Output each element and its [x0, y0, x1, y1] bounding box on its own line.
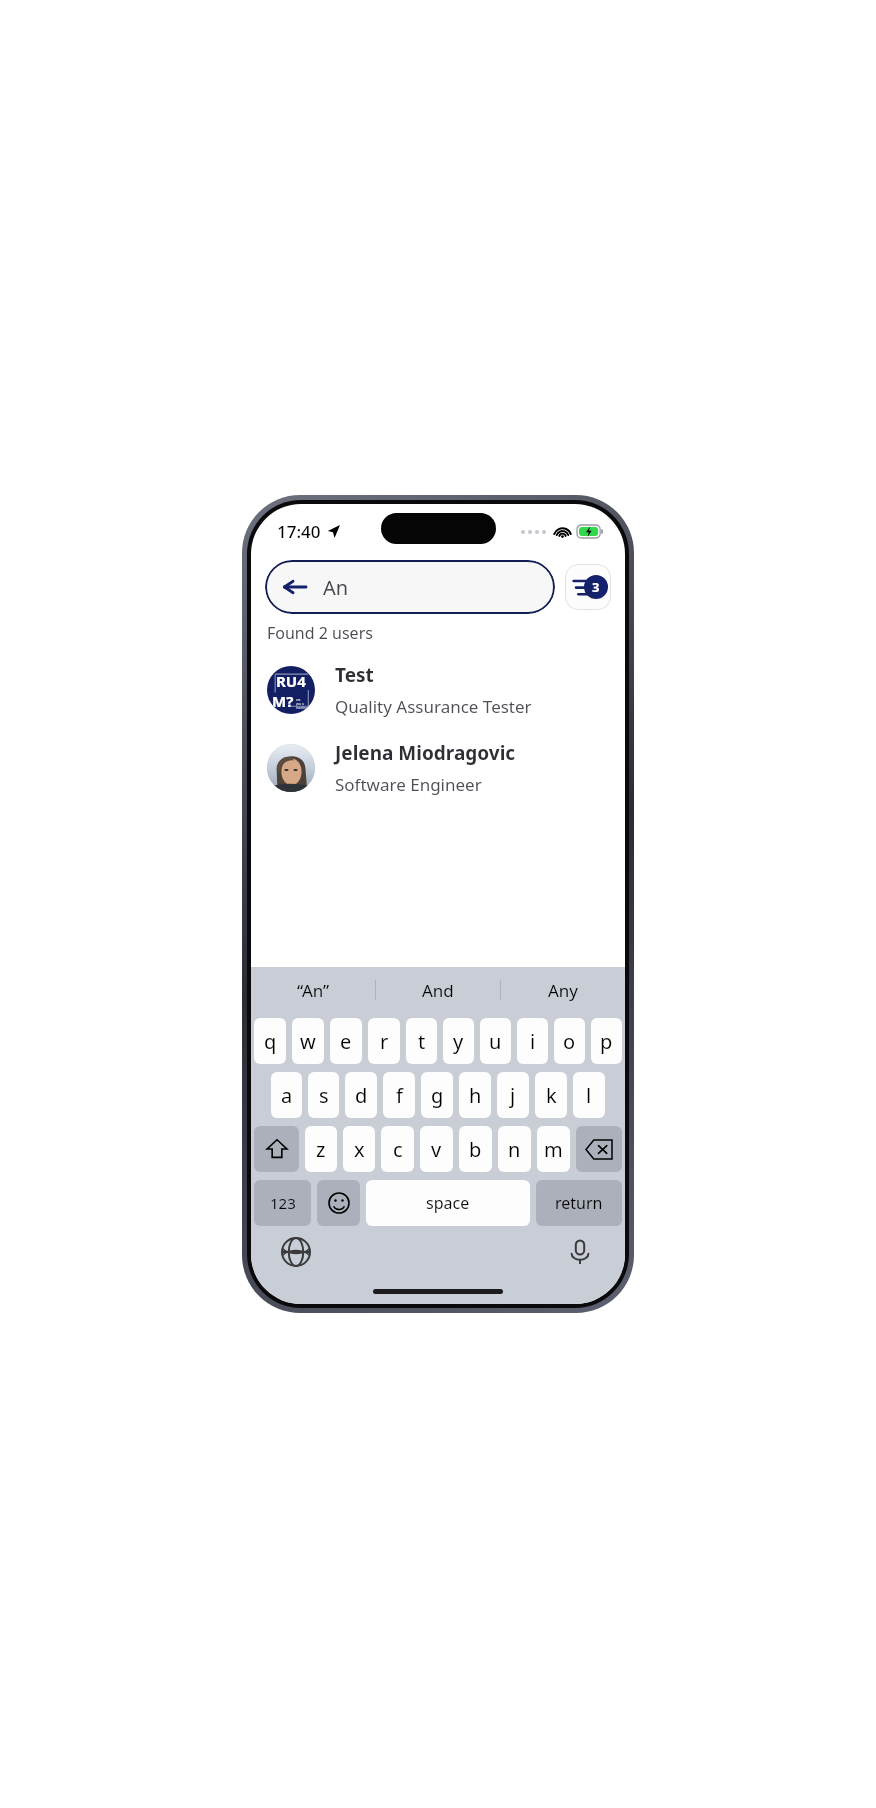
staticText: y [453, 1028, 464, 1055]
staticText: h [469, 1082, 482, 1109]
staticText: v [431, 1136, 442, 1163]
button[interactable]: v [420, 1126, 453, 1172]
button[interactable]: d [345, 1072, 377, 1118]
staticText: And [422, 979, 454, 1002]
staticText: Any [548, 979, 579, 1002]
button[interactable]: space [366, 1180, 530, 1226]
button[interactable]: t [406, 1018, 437, 1064]
staticText: w [300, 1028, 316, 1055]
button[interactable]: j [497, 1072, 529, 1118]
button[interactable]: r [368, 1018, 400, 1064]
staticText: i [530, 1028, 536, 1055]
staticText: o [563, 1028, 576, 1055]
button[interactable]: “An” [251, 967, 375, 1013]
staticText: n [508, 1136, 521, 1163]
staticText: return [555, 1192, 603, 1214]
staticText: Jelena Miodragovic [335, 740, 516, 766]
staticText: s [319, 1082, 329, 1109]
button[interactable]: p [591, 1018, 622, 1064]
button[interactable]: Filters, 3 active [565, 564, 611, 610]
button[interactable]: And [376, 967, 500, 1013]
staticText: z [316, 1136, 326, 1163]
button[interactable]: g [421, 1072, 453, 1118]
staticText: you a [296, 702, 304, 706]
button[interactable]: y [443, 1018, 474, 1064]
staticText: r [380, 1028, 389, 1055]
staticText: d [355, 1082, 368, 1109]
button[interactable]: Shift [254, 1126, 299, 1172]
button[interactable]: return [536, 1180, 622, 1226]
staticText: M? [272, 691, 294, 711]
button[interactable]: 123 [254, 1180, 311, 1226]
button[interactable]: z [305, 1126, 337, 1172]
button[interactable]: RU4 [251, 660, 625, 720]
staticText: Quality Assurance Tester [335, 695, 532, 718]
button[interactable]: Delete [576, 1126, 622, 1172]
button[interactable]: x [343, 1126, 375, 1172]
staticText: Test [335, 662, 374, 688]
staticText: u [489, 1028, 502, 1055]
staticText: l [586, 1082, 592, 1109]
staticText: meeting? [296, 706, 310, 710]
staticText: j [510, 1082, 516, 1109]
staticText: Found 2 users [267, 622, 373, 644]
button[interactable]: Any [501, 967, 625, 1013]
button[interactable]: u [480, 1018, 511, 1064]
staticText: k [546, 1082, 557, 1109]
button[interactable]: k [535, 1072, 567, 1118]
button[interactable]: i [517, 1018, 548, 1064]
button[interactable]: m [537, 1126, 570, 1172]
staticText: Software Engineer [335, 773, 482, 796]
button[interactable]: q [254, 1018, 286, 1064]
button[interactable]: Change keyboard [279, 1235, 313, 1269]
other: Back [283, 575, 307, 599]
staticText: b [469, 1136, 482, 1163]
button[interactable]: Back [265, 560, 555, 614]
button[interactable]: b [459, 1126, 492, 1172]
staticText: e [340, 1028, 352, 1055]
staticText: “An” [297, 979, 330, 1002]
button[interactable]: h [459, 1072, 491, 1118]
staticText: q [264, 1028, 277, 1055]
button[interactable]: f [383, 1072, 415, 1118]
button[interactable]: l [573, 1072, 605, 1118]
button[interactable]: w [292, 1018, 324, 1064]
staticText: m [544, 1136, 563, 1163]
staticText: 17:40 [277, 520, 321, 543]
staticText: RU4 [276, 671, 306, 691]
staticText: An [323, 574, 349, 601]
staticText: 3 [592, 578, 600, 596]
staticText: a [281, 1082, 293, 1109]
staticText: x [354, 1136, 365, 1163]
button[interactable]: c [381, 1126, 414, 1172]
staticText: c [393, 1136, 403, 1163]
staticText: 123 [270, 1193, 296, 1213]
staticText: g [431, 1082, 444, 1109]
button[interactable]: a [271, 1072, 302, 1118]
staticText: space [426, 1192, 470, 1214]
button[interactable]: n [498, 1126, 531, 1172]
button[interactable]: e [330, 1018, 362, 1064]
button[interactable]: Emoji [317, 1180, 360, 1226]
staticText: p [600, 1028, 613, 1055]
button[interactable]: o [554, 1018, 585, 1064]
button[interactable]: Jelena Miodragovic [251, 738, 625, 798]
staticText: f [396, 1082, 403, 1109]
button[interactable]: Dictation [563, 1235, 597, 1269]
staticText: are [296, 698, 301, 702]
button[interactable]: s [308, 1072, 339, 1118]
staticText: t [418, 1028, 426, 1055]
